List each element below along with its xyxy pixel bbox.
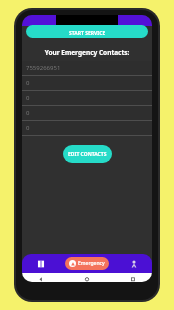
staticText: 0: [26, 109, 30, 117]
button[interactable]: START SERVICE: [26, 25, 148, 38]
button[interactable]: EDIT CONTACTS: [63, 145, 112, 163]
staticText: 7559266951: [26, 64, 61, 72]
button[interactable]: 0: [22, 91, 152, 106]
button[interactable]: Emergency: [65, 257, 109, 270]
staticText: Emergency: [78, 260, 105, 267]
button[interactable]: 0: [22, 106, 152, 121]
staticText: 0: [26, 94, 30, 102]
staticText: Your Emergency Contacts:: [22, 48, 152, 57]
staticText: 0: [26, 124, 30, 132]
button[interactable]: Recents: [130, 276, 136, 282]
button[interactable]: Guide: [22, 254, 59, 273]
staticText: START SERVICE: [69, 30, 106, 37]
staticText: EDIT CONTACTS: [68, 151, 107, 158]
button[interactable]: Back: [38, 276, 44, 282]
button[interactable]: 0: [22, 121, 152, 136]
button[interactable]: Home: [84, 276, 90, 282]
button[interactable]: Profile: [115, 254, 152, 273]
staticText: 0: [26, 79, 30, 87]
button[interactable]: 7559266951: [22, 61, 152, 76]
button[interactable]: 0: [22, 76, 152, 91]
